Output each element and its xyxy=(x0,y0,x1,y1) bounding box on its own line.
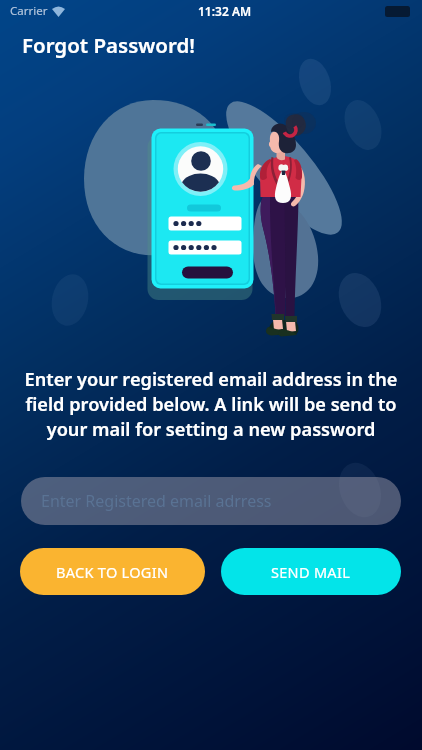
staticText: Carrier xyxy=(10,3,48,19)
staticText: Forgot Password! xyxy=(22,31,195,59)
button[interactable]: Enter Registered email adrress xyxy=(21,477,401,525)
staticText: Enter your registered email address in t… xyxy=(14,367,408,442)
staticText: 11:32 AM xyxy=(198,3,252,19)
button[interactable]: SEND MAIL xyxy=(221,548,401,595)
staticText: BACK TO LOGIN xyxy=(56,562,169,582)
staticText: Enter Registered email adrress xyxy=(41,490,272,512)
button[interactable]: BACK TO LOGIN xyxy=(20,548,205,595)
staticText: SEND MAIL xyxy=(271,562,351,582)
